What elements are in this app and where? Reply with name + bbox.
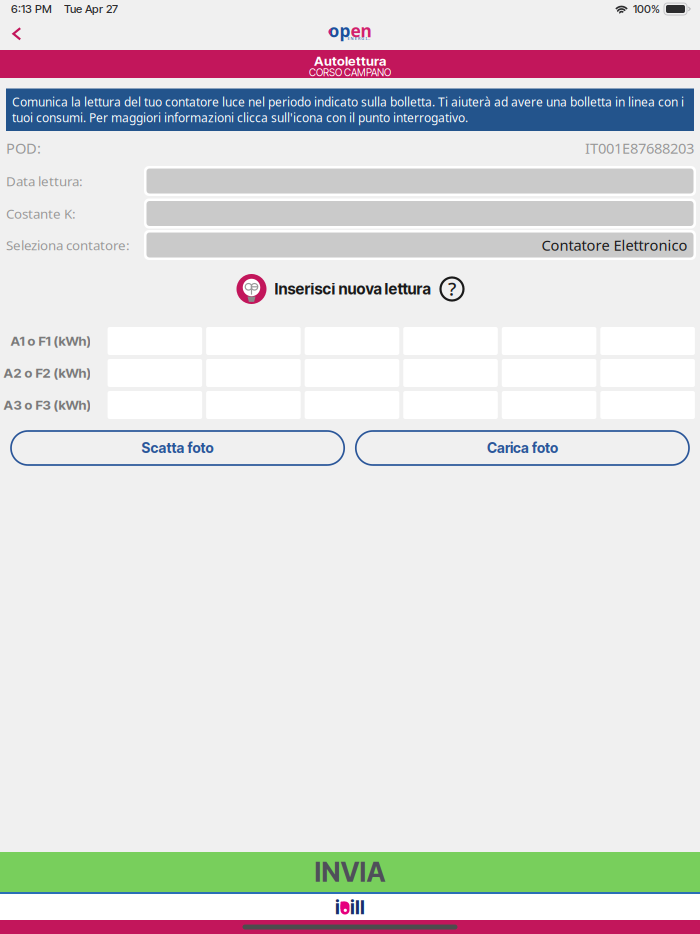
button[interactable]: Scatta foto (11, 431, 344, 465)
staticText: Data lettura: (6, 172, 83, 190)
staticText: Tue Apr 27 (64, 2, 118, 16)
staticText: Carica foto (487, 439, 558, 456)
staticText: Autolettura (314, 53, 386, 69)
button[interactable]: Carica foto (356, 431, 689, 465)
staticText: Contatore Elettronico (541, 235, 687, 255)
staticText: ill (350, 895, 365, 919)
button[interactable] (144, 198, 696, 228)
staticText: en (350, 19, 371, 42)
button[interactable]: Back (0, 18, 34, 50)
staticText: op (328, 19, 350, 42)
staticText: INVIA (314, 856, 385, 888)
button[interactable] (144, 166, 696, 196)
staticText: Inserisci nuova lettura (274, 280, 430, 298)
button[interactable]: Help (430, 277, 463, 300)
staticText: Costante K: (6, 205, 76, 222)
staticText: A2 o F2 (kWh) (3, 365, 91, 381)
staticText: Seleziona contatore: (6, 236, 130, 254)
staticText: POD: (6, 138, 41, 158)
staticText: IT001E87688203 (585, 138, 694, 158)
staticText: ENERGIA (347, 36, 371, 41)
button[interactable]: INVIA (0, 852, 700, 892)
staticText: 6:13 PM (11, 2, 52, 16)
button[interactable]: Contatore Elettronico (144, 230, 696, 260)
staticText: i (335, 895, 340, 919)
staticText: Comunica la lettura del tuo contatore lu… (12, 94, 684, 126)
staticText: 100% (633, 2, 660, 16)
staticText: A3 o F3 (kWh) (3, 397, 91, 413)
staticText: CORSO CAMPANO (309, 66, 391, 79)
staticText: ? (448, 276, 456, 301)
staticText: A1 o F1 (kWh) (10, 333, 91, 349)
staticText: Scatta foto (142, 439, 214, 456)
